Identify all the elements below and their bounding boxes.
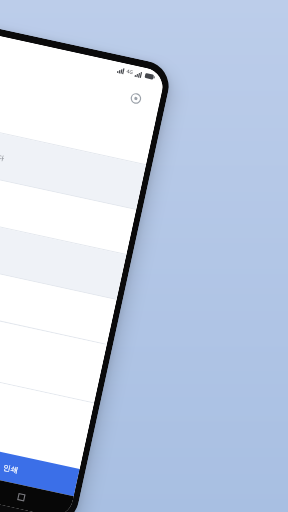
staticText: 4G (126, 68, 134, 76)
button[interactable]: Settings (124, 87, 148, 110)
button[interactable]: Recents (9, 485, 33, 509)
button[interactable]: 인쇄 (0, 440, 80, 496)
button[interactable]: Design 앱을 소개합니다 (0, 117, 146, 210)
button[interactable] (0, 162, 136, 255)
button[interactable] (0, 207, 126, 300)
button[interactable] (0, 72, 156, 165)
button[interactable] (0, 252, 116, 345)
button[interactable] (0, 297, 107, 404)
staticText: 인쇄 (2, 463, 19, 475)
staticText: Design 앱을 소개합니다 (0, 139, 6, 163)
